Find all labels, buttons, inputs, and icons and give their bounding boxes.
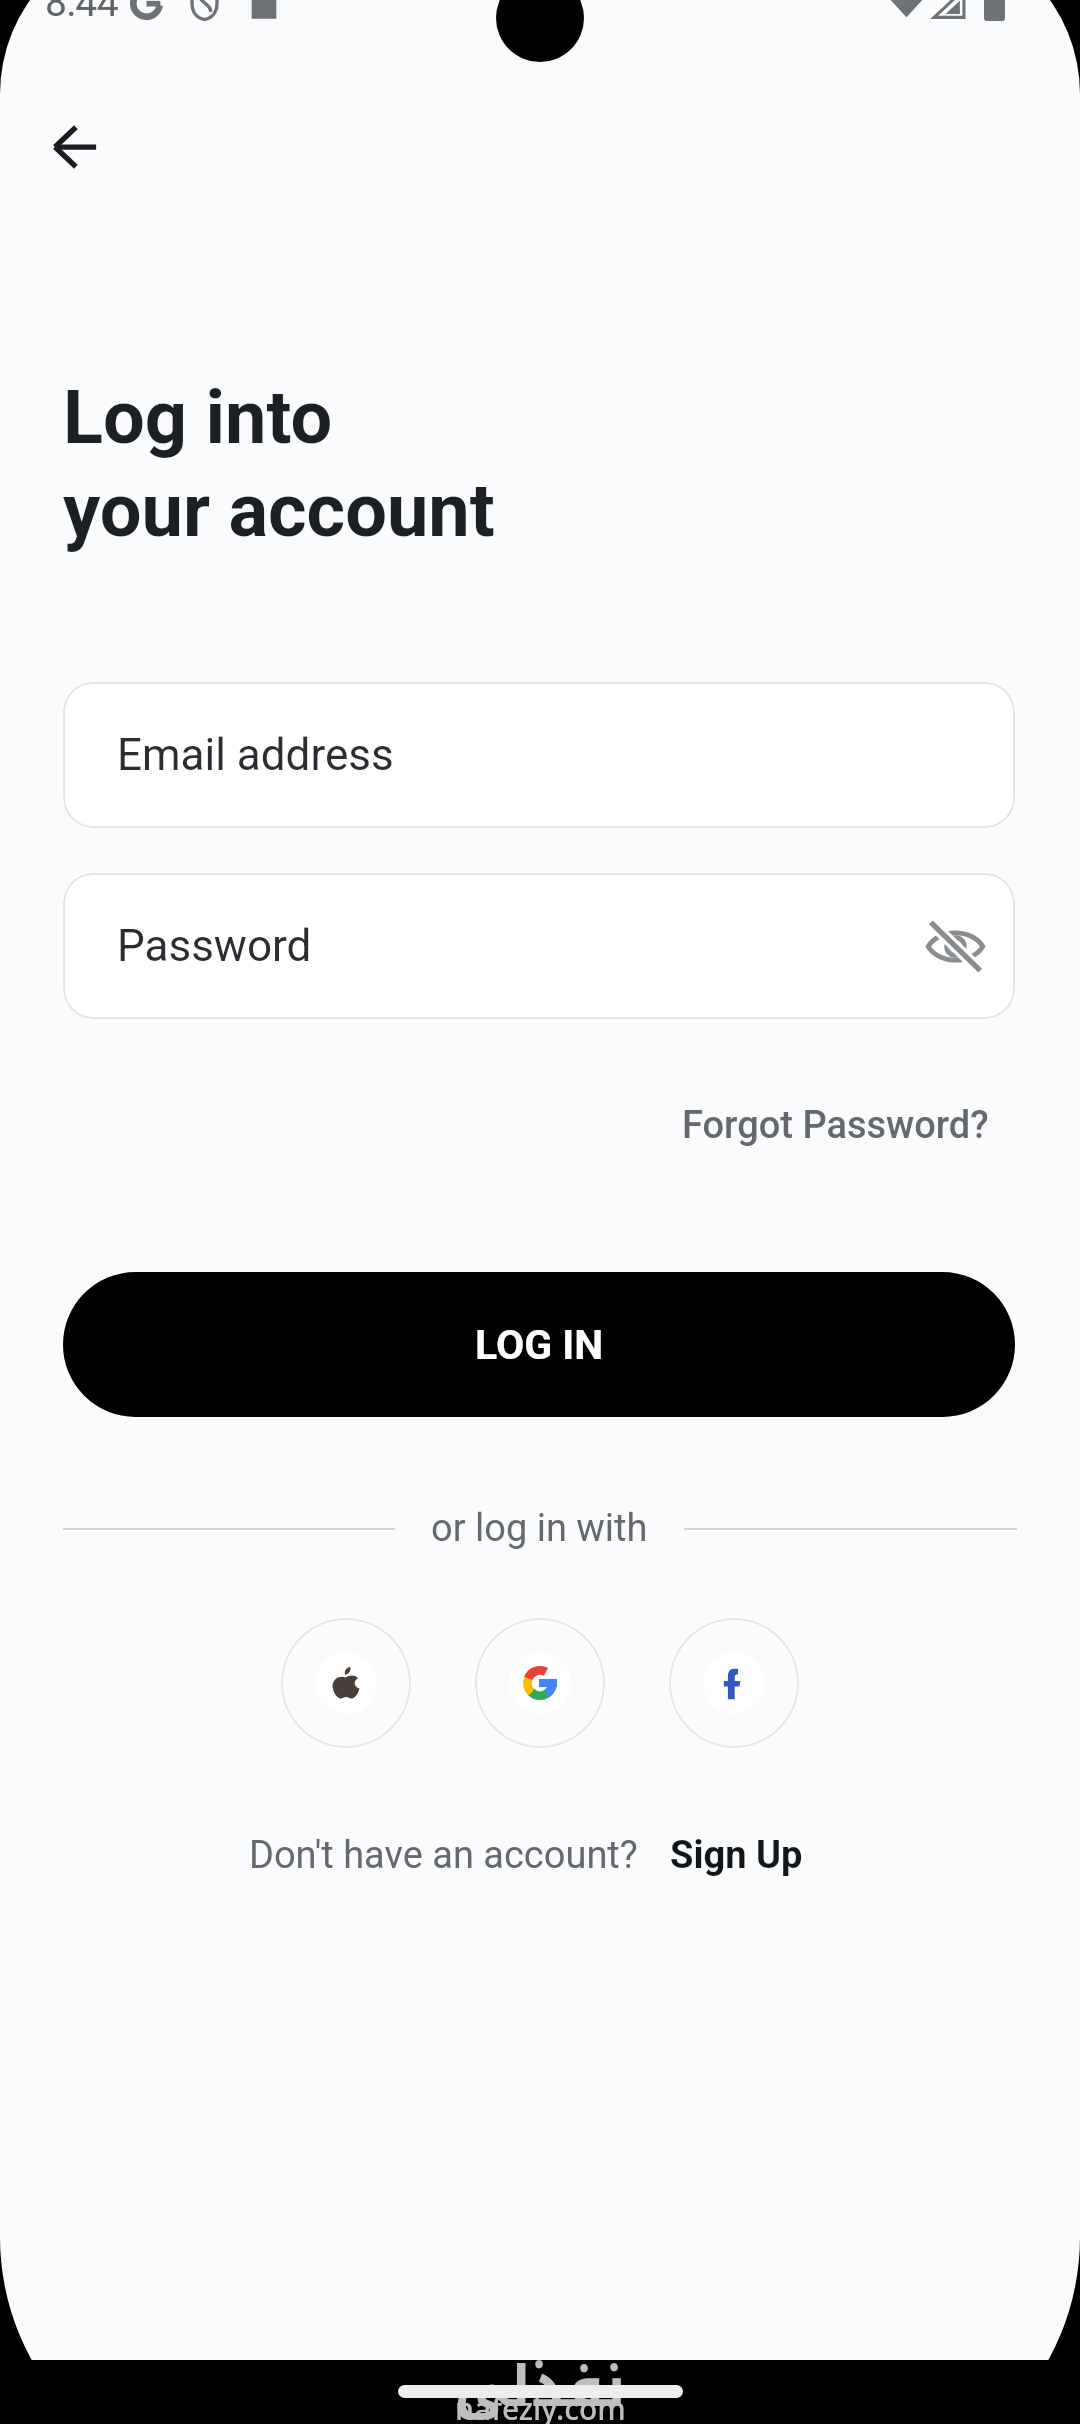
staticText: نفذلي (454, 2334, 626, 2424)
button[interactable]: Email address (63, 682, 1015, 828)
button[interactable]: Sign in with Facebook (669, 1618, 799, 1748)
staticText: Password (117, 920, 312, 972)
staticText: nafezly.com (455, 2382, 626, 2424)
button[interactable]: Sign in with Google (475, 1618, 605, 1748)
staticText: Don't have an account? (249, 1833, 638, 1878)
staticText: Sign Up (670, 1833, 803, 1878)
button[interactable]: Forgot Password? (660, 1093, 1011, 1158)
staticText: Forgot Password? (682, 1103, 989, 1148)
staticText: Email address (117, 729, 394, 781)
staticText: 8:44 (45, 0, 119, 26)
button[interactable]: Sign in with Apple (281, 1618, 411, 1748)
staticText: LOG IN (475, 1321, 604, 1369)
staticText: Log into your account (63, 374, 495, 554)
button[interactable]: Back (28, 100, 122, 194)
button[interactable]: Toggle password visibility (915, 906, 995, 986)
staticText: or log in with (431, 1506, 648, 1551)
button[interactable]: Password (63, 873, 1015, 1019)
button[interactable]: Sign Up (638, 1833, 803, 1878)
button[interactable]: LOG IN (63, 1272, 1015, 1417)
